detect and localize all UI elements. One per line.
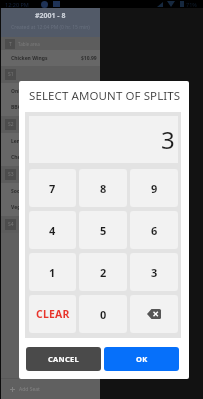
button[interactable]: Chicken Wings: [11, 50, 97, 66]
staticText: SELECT AMOUNT OF SPLITS: [29, 88, 181, 104]
button[interactable]: BBQ Ribs: [11, 99, 97, 116]
button[interactable]: 3: [130, 253, 178, 291]
staticText: #2001 - 8: [35, 11, 66, 21]
staticText: $10.99: [81, 55, 97, 62]
staticText: BBQ Ribs: [11, 104, 34, 111]
staticText: 2: [100, 265, 107, 280]
staticText: Cheese Sticks: [11, 154, 45, 161]
button[interactable]: Veggie Plate: [11, 199, 97, 216]
staticText: Veggie Plate: [11, 204, 42, 211]
staticText: Chicken Wings: [11, 55, 48, 62]
staticText: 0: [100, 307, 107, 322]
staticText: 3: [161, 123, 175, 156]
staticText: S4: [8, 221, 14, 228]
staticText: Soda: [11, 188, 24, 195]
staticText: 9: [151, 181, 158, 196]
button[interactable]: 4: [29, 211, 76, 249]
button[interactable]: 1: [29, 253, 76, 291]
staticText: T: [9, 41, 12, 48]
button[interactable]: OK: [104, 347, 179, 371]
button[interactable]: 0: [79, 295, 127, 333]
button[interactable]: Delete: [130, 295, 178, 333]
button[interactable]: Lemonade: [11, 133, 97, 149]
button[interactable]: 2: [79, 253, 127, 291]
staticText: OK: [136, 354, 148, 364]
button[interactable]: CLEAR: [29, 295, 76, 333]
staticText: 4: [49, 223, 56, 238]
staticText: 8: [100, 181, 107, 196]
staticText: 7: [49, 181, 56, 196]
staticText: 6: [151, 223, 158, 238]
staticText: 12:20 PM: [5, 1, 29, 8]
staticText: 1: [49, 265, 56, 280]
button[interactable]: Cheese Sticks: [11, 149, 97, 166]
button[interactable]: 6: [130, 211, 178, 249]
staticText: S1: [8, 71, 14, 78]
staticText: Lemonade: [11, 138, 38, 145]
staticText: Onion Rings: [11, 88, 42, 95]
button[interactable]: 7: [29, 169, 76, 207]
staticText: 71%: [186, 1, 197, 8]
button[interactable]: Add Seat: [10, 379, 100, 399]
button[interactable]: 8: [79, 169, 127, 207]
staticText: S2: [8, 121, 14, 128]
staticText: 5: [100, 223, 107, 238]
staticText: Created at 12:04 PM (0 hr, 15 min): [11, 24, 90, 31]
button[interactable]: 9: [130, 169, 178, 207]
button[interactable]: CANCEL: [26, 347, 101, 371]
staticText: 3: [151, 265, 158, 280]
button[interactable]: Onion Rings: [11, 83, 97, 99]
staticText: S3: [8, 171, 14, 178]
staticText: CLEAR: [36, 307, 70, 321]
button[interactable]: 5: [79, 211, 127, 249]
other: Delete: [147, 309, 161, 319]
staticText: CANCEL: [48, 354, 80, 364]
staticText: Table area: [18, 41, 40, 47]
staticText: Add Seat: [19, 386, 40, 393]
button[interactable]: Soda: [11, 183, 97, 199]
